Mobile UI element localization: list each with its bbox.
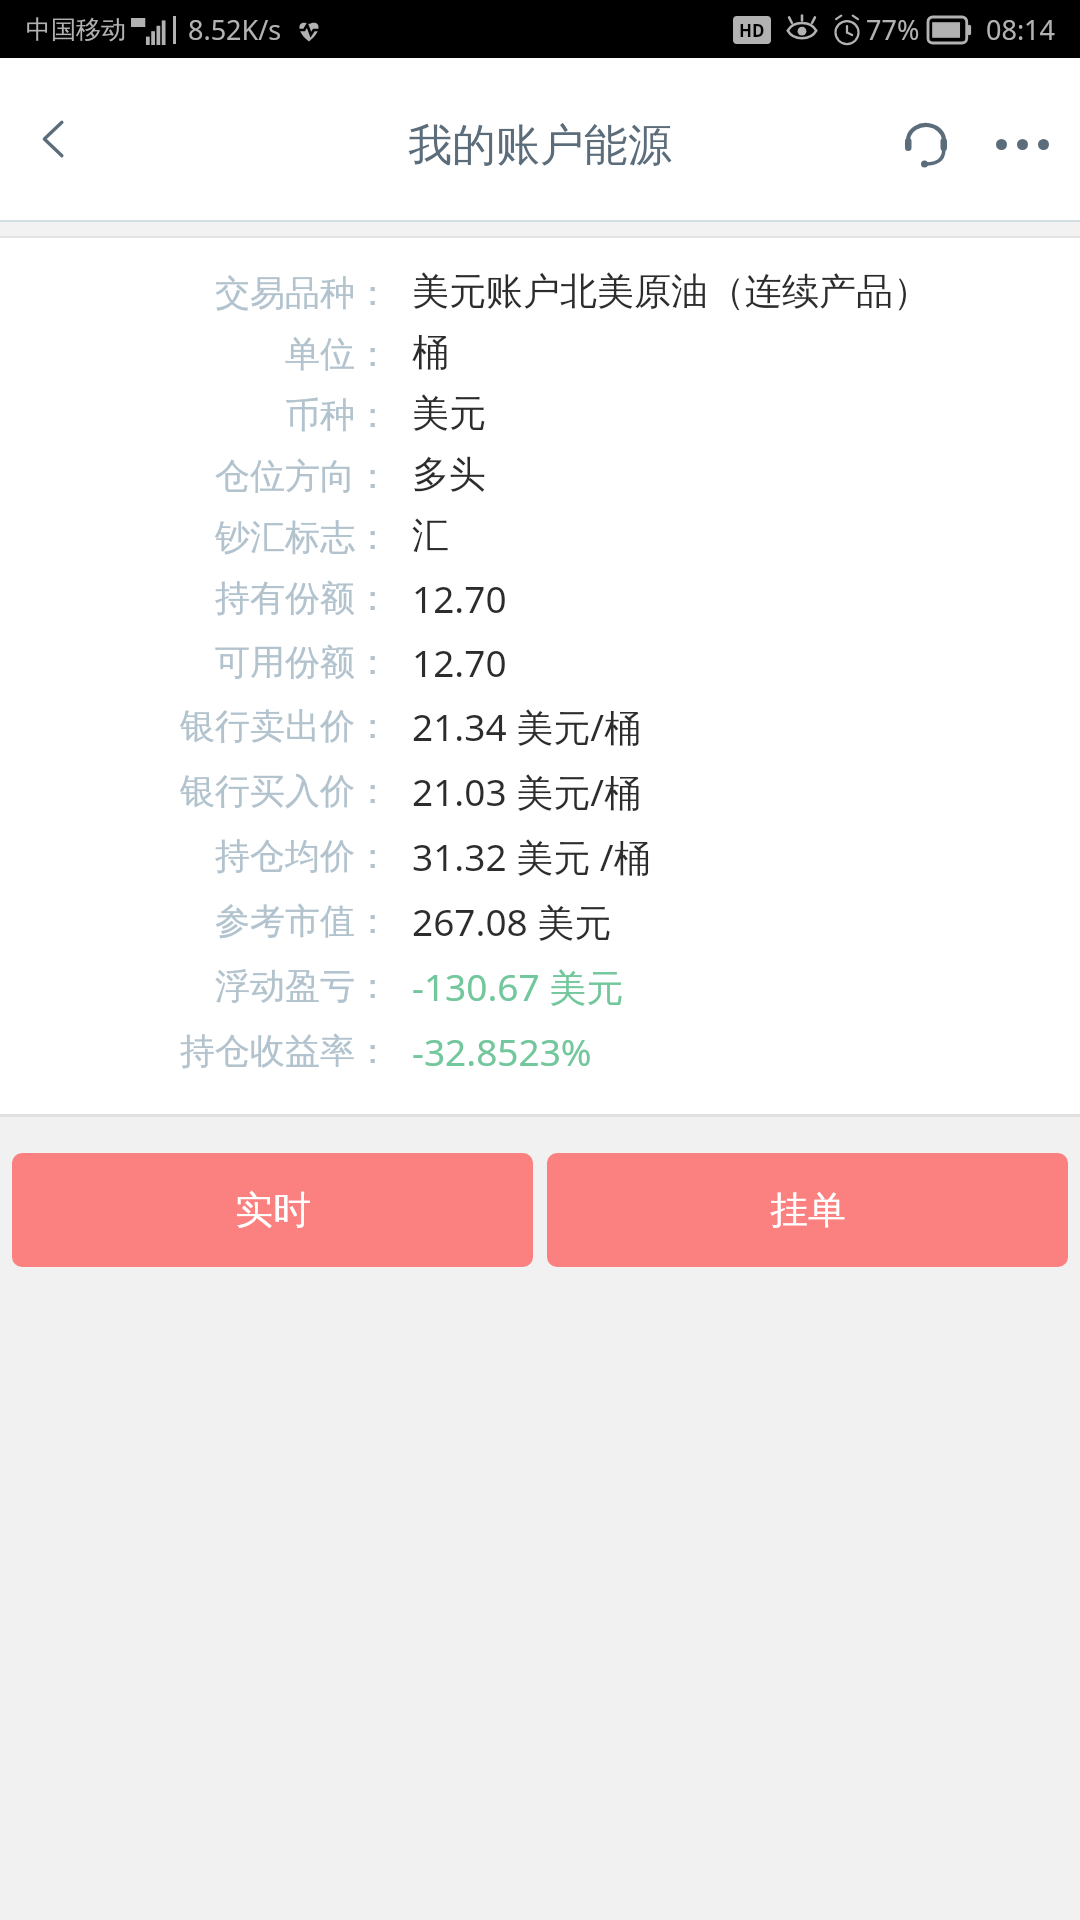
staticText: 银行卖出价： — [0, 704, 390, 748]
staticText: 持仓收益率： — [0, 1029, 390, 1073]
staticText: 单位： — [0, 332, 390, 376]
button[interactable]: 实时 — [12, 1153, 533, 1267]
button[interactable]: 单位： — [0, 325, 1080, 376]
button[interactable]: 持有份额： — [0, 569, 1080, 623]
staticText: 我的账户能源 — [408, 118, 672, 173]
staticText: 31.32 美元 /桶 — [412, 831, 990, 882]
button[interactable]: 币种： — [0, 386, 1080, 437]
staticText: 参考市值： — [0, 899, 390, 943]
button[interactable]: 钞汇标志： — [0, 508, 1080, 559]
staticText: 可用份额： — [0, 640, 390, 684]
button[interactable]: Customer service — [878, 96, 974, 192]
button[interactable]: 仓位方向： — [0, 447, 1080, 498]
staticText: 12.70 — [412, 573, 990, 623]
staticText: 中国移动 — [26, 14, 126, 45]
button[interactable]: 挂单 — [547, 1153, 1068, 1267]
staticText: 浮动盈亏： — [0, 964, 390, 1008]
staticText: -130.67 美元 — [412, 961, 990, 1012]
staticText: 267.08 美元 — [412, 896, 990, 947]
staticText: 仓位方向： — [0, 454, 390, 498]
button[interactable]: More options — [974, 96, 1070, 192]
button[interactable]: 交易品种： — [0, 264, 1080, 315]
staticText: 12.70 — [412, 637, 990, 687]
staticText: 美元 — [412, 390, 990, 437]
staticText: 挂单 — [770, 1186, 846, 1234]
staticText: 77% — [866, 11, 920, 48]
button[interactable]: 持仓收益率： — [0, 1022, 1080, 1076]
staticText: -32.8523% — [412, 1026, 990, 1076]
button[interactable]: Back — [6, 91, 102, 187]
staticText: 21.34 美元/桶 — [412, 701, 990, 752]
staticText: 交易品种： — [0, 271, 390, 315]
button[interactable]: 银行买入价： — [0, 762, 1080, 817]
staticText: 实时 — [235, 1186, 311, 1234]
staticText: 桶 — [412, 329, 990, 376]
staticText: HD — [739, 19, 765, 42]
staticText: 持仓均价： — [0, 834, 390, 878]
button[interactable]: 可用份额： — [0, 633, 1080, 687]
staticText: 多头 — [412, 451, 990, 498]
staticText: 币种： — [0, 393, 390, 437]
staticText: 21.03 美元/桶 — [412, 766, 990, 817]
staticText: 08:14 — [986, 11, 1056, 48]
button[interactable]: 参考市值： — [0, 892, 1080, 947]
staticText: 持有份额： — [0, 576, 390, 620]
staticText: 银行买入价： — [0, 769, 390, 813]
staticText: 钞汇标志： — [0, 515, 390, 559]
button[interactable]: 银行卖出价： — [0, 697, 1080, 752]
staticText: 汇 — [412, 512, 990, 559]
staticText: 美元账户北美原油（连续产品） — [412, 268, 990, 315]
button[interactable]: 浮动盈亏： — [0, 957, 1080, 1012]
staticText: 8.52K/s — [188, 11, 282, 48]
button[interactable]: 持仓均价： — [0, 827, 1080, 882]
